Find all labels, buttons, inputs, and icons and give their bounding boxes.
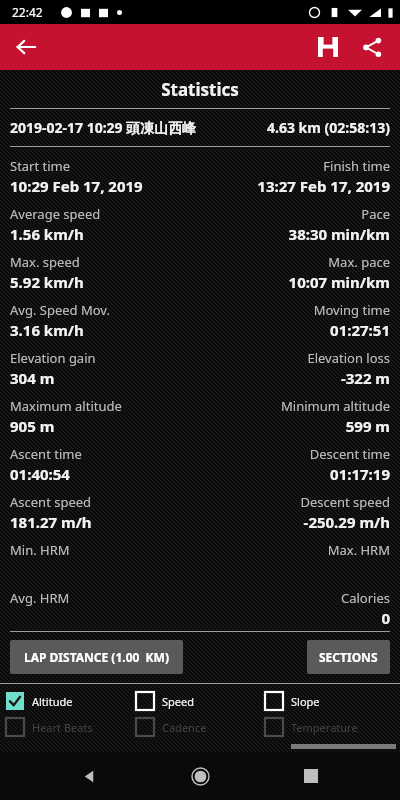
staticText: Max. pace — [328, 253, 390, 271]
button[interactable]: SECTIONS — [307, 640, 390, 674]
staticText: LAP DISTANCE (1.00 KM) — [24, 649, 169, 665]
staticText: 181.27 m/h — [10, 512, 92, 532]
staticText: Avg. HRM — [10, 589, 70, 607]
staticText: 599 m — [345, 416, 390, 436]
staticText: Cadence — [162, 720, 207, 735]
button[interactable]: LAP DISTANCE (1.00 KM) — [10, 640, 183, 674]
staticText: Finish time — [323, 157, 390, 175]
button[interactable]: Heart Beats — [6, 716, 136, 738]
button[interactable]: Back — [67, 754, 111, 798]
button[interactable]: Share — [350, 25, 394, 69]
staticText: Avg. Speed Mov. — [10, 301, 110, 319]
staticText: Max. HRM — [327, 541, 390, 559]
staticText: 10:29 Feb 17, 2019 — [10, 176, 143, 196]
staticText: 01:17:19 — [330, 464, 390, 484]
staticText: Altitude — [32, 694, 73, 709]
staticText: 38:30 min/km — [288, 224, 390, 244]
staticText: 0 — [381, 608, 390, 628]
staticText: Calories — [340, 589, 390, 607]
staticText: Minimum altitude — [280, 397, 390, 415]
staticText: Elevation gain — [10, 349, 96, 367]
staticText: 1.56 km/h — [10, 224, 84, 244]
staticText: 304 m — [10, 368, 55, 388]
staticText: 01:27:51 — [330, 320, 390, 340]
staticText: Average speed — [10, 205, 101, 223]
staticText: 22:42 — [12, 4, 43, 20]
staticText: -322 m — [340, 368, 390, 388]
staticText: Slope — [291, 694, 320, 709]
staticText: Start time — [10, 157, 71, 175]
staticText: Max. speed — [10, 253, 80, 271]
staticText: Descent time — [309, 445, 390, 463]
staticText: SECTIONS — [319, 649, 378, 665]
staticText: 13:27 Feb 17, 2019 — [257, 176, 390, 196]
staticText: Ascent speed — [10, 493, 92, 511]
staticText: 5.92 km/h — [10, 272, 84, 292]
staticText: Heart Beats — [32, 720, 93, 735]
button[interactable]: Home — [178, 754, 222, 798]
staticText: 10:07 min/km — [288, 272, 390, 292]
staticText: -250.29 m/h — [303, 512, 390, 532]
staticText: Descent speed — [300, 493, 390, 511]
button[interactable]: Speed — [136, 690, 265, 712]
staticText: Speed — [162, 694, 194, 709]
button[interactable]: Save — [306, 25, 350, 69]
staticText: Moving time — [313, 301, 390, 319]
staticText: 4.63 km (02:58:13) — [267, 118, 390, 137]
staticText: Temperature — [291, 720, 358, 735]
button[interactable]: Altitude — [6, 690, 136, 712]
staticText: Ascent time — [10, 445, 82, 463]
staticText: 905 m — [10, 416, 55, 436]
button[interactable]: Temperature — [265, 716, 394, 738]
button[interactable]: Back — [6, 27, 46, 67]
staticText: Min. HRM — [10, 541, 70, 559]
staticText: Elevation loss — [307, 349, 390, 367]
staticText: 2019-02-17 10:29 頭凍山西峰 — [10, 118, 197, 137]
staticText: 3.16 km/h — [10, 320, 84, 340]
button[interactable]: Recent apps — [289, 754, 333, 798]
staticText: Statistics — [0, 78, 400, 101]
staticText: 01:40:54 — [10, 464, 70, 484]
staticText: Pace — [361, 205, 390, 223]
button[interactable]: Cadence — [136, 716, 265, 738]
button[interactable]: Slope — [265, 690, 394, 712]
staticText: Maximum altitude — [10, 397, 122, 415]
